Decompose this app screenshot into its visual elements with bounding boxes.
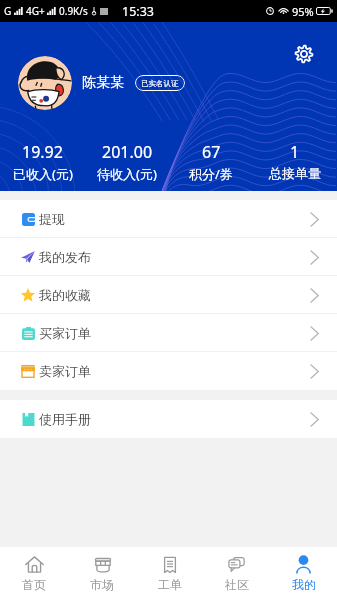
staticText: 0.9K/s: [59, 4, 88, 18]
staticText: 提现: [39, 211, 65, 227]
staticText: 总接单量: [269, 165, 321, 181]
staticText: 已实名认证: [141, 79, 179, 88]
staticText: 待收入(元): [97, 165, 157, 183]
staticText: 我的收藏: [39, 287, 91, 303]
staticText: 19.92: [22, 141, 63, 163]
staticText: 201.00: [102, 141, 153, 163]
staticText: 工单: [158, 577, 182, 592]
button[interactable]: 社区: [203, 547, 270, 600]
staticText: G: [4, 4, 12, 18]
button[interactable]: 买家订单: [0, 314, 337, 352]
button[interactable]: 提现: [0, 200, 337, 238]
staticText: 使用手册: [39, 411, 91, 427]
button[interactable]: 市场: [68, 547, 136, 600]
staticText: 已收入(元): [13, 165, 73, 183]
button[interactable]: 我的: [270, 547, 337, 600]
button[interactable]: Settings: [292, 42, 316, 66]
staticText: 我的发布: [39, 249, 91, 265]
staticText: 卖家订单: [39, 363, 91, 379]
button[interactable]: 使用手册: [0, 400, 337, 438]
staticText: 首页: [22, 577, 46, 592]
staticText: 15:33: [122, 3, 154, 20]
staticText: 1: [290, 141, 300, 163]
staticText: 买家订单: [39, 325, 91, 341]
button[interactable]: 卖家订单: [0, 352, 337, 390]
staticText: 95%: [292, 4, 314, 19]
button[interactable]: 我的收藏: [0, 276, 337, 314]
staticText: 67: [202, 141, 221, 163]
staticText: 我的: [292, 577, 316, 592]
button[interactable]: 我的发布: [0, 238, 337, 276]
button[interactable]: 工单: [136, 547, 203, 600]
staticText: 社区: [225, 577, 249, 592]
staticText: 市场: [90, 577, 114, 592]
button[interactable]: 首页: [0, 547, 68, 600]
staticText: 积分/券: [189, 165, 233, 183]
staticText: 陈某某: [82, 74, 124, 92]
staticText: 4G+: [26, 4, 45, 18]
